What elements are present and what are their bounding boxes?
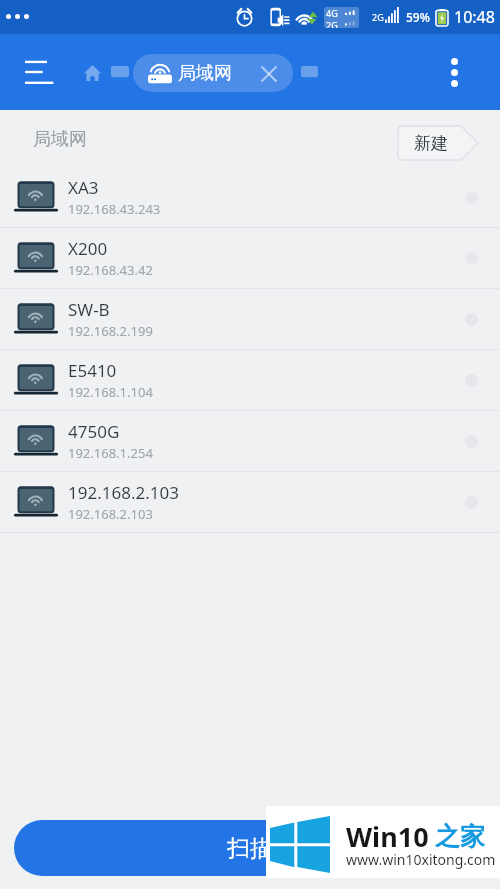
staticText: 2G xyxy=(372,11,384,23)
staticText: XA3 xyxy=(68,176,99,199)
staticText: 扫描 xyxy=(227,834,273,863)
button[interactable]: E5410 xyxy=(0,350,500,410)
button[interactable]: Home xyxy=(76,56,109,89)
staticText: 10:48 xyxy=(454,6,495,28)
staticText: 局域网 xyxy=(178,62,232,85)
staticText: 局域网 xyxy=(33,128,87,151)
button[interactable]: Tab 2 xyxy=(293,56,325,88)
staticText: SW-B xyxy=(68,298,110,321)
staticText: 新建 xyxy=(414,133,448,154)
button[interactable]: 新建 xyxy=(398,126,478,160)
button[interactable]: More options xyxy=(431,49,477,95)
button[interactable]: XA3 xyxy=(0,167,500,227)
button[interactable]: SW-B xyxy=(0,289,500,349)
staticText: 59% xyxy=(406,9,430,25)
staticText: 之家 xyxy=(435,821,485,852)
staticText: 192.168.1.254 xyxy=(68,444,153,462)
staticText: Win10 xyxy=(346,818,429,855)
staticText: X200 xyxy=(68,237,108,260)
staticText: E5410 xyxy=(68,359,117,382)
staticText: 192.168.2.199 xyxy=(68,322,153,340)
button[interactable]: 局域网 xyxy=(133,54,293,92)
staticText: 192.168.2.103 xyxy=(68,505,153,523)
staticText: 192.168.2.103 xyxy=(68,481,179,504)
staticText: 4750G xyxy=(68,420,120,443)
staticText: 192.168.43.42 xyxy=(68,261,153,279)
button[interactable]: 4750G xyxy=(0,411,500,471)
button[interactable]: 192.168.2.103 xyxy=(0,472,500,532)
staticText: www.win10xitong.com xyxy=(346,850,496,869)
button[interactable]: 扫描 xyxy=(14,820,486,876)
staticText: 192.168.1.104 xyxy=(68,383,153,401)
staticText: 4G xyxy=(326,7,338,19)
button[interactable]: Menu xyxy=(9,48,57,96)
button[interactable]: X200 xyxy=(0,228,500,288)
staticText: 192.168.43.243 xyxy=(68,200,161,218)
button[interactable]: Tab xyxy=(104,56,136,88)
staticText: 2G xyxy=(326,19,338,28)
